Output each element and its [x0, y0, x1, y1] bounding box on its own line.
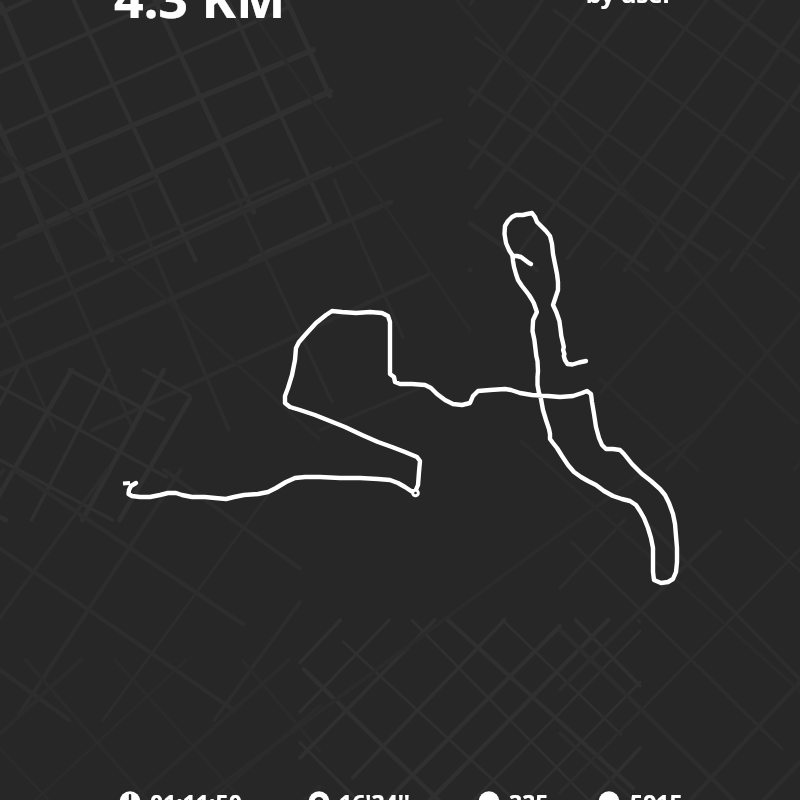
staticText: 5915 — [630, 787, 683, 800]
staticText: by user — [586, 0, 674, 10]
button[interactable]: Calories — [479, 786, 629, 800]
staticText: 4.3 KM — [114, 0, 286, 33]
button[interactable]: Duration — [120, 786, 270, 800]
staticText: 16'34'' — [339, 787, 410, 800]
button[interactable]: Average pace — [309, 786, 459, 800]
staticText: 335 — [509, 787, 549, 800]
button[interactable]: Steps — [600, 786, 750, 800]
staticText: 01:11:50 — [150, 787, 242, 800]
